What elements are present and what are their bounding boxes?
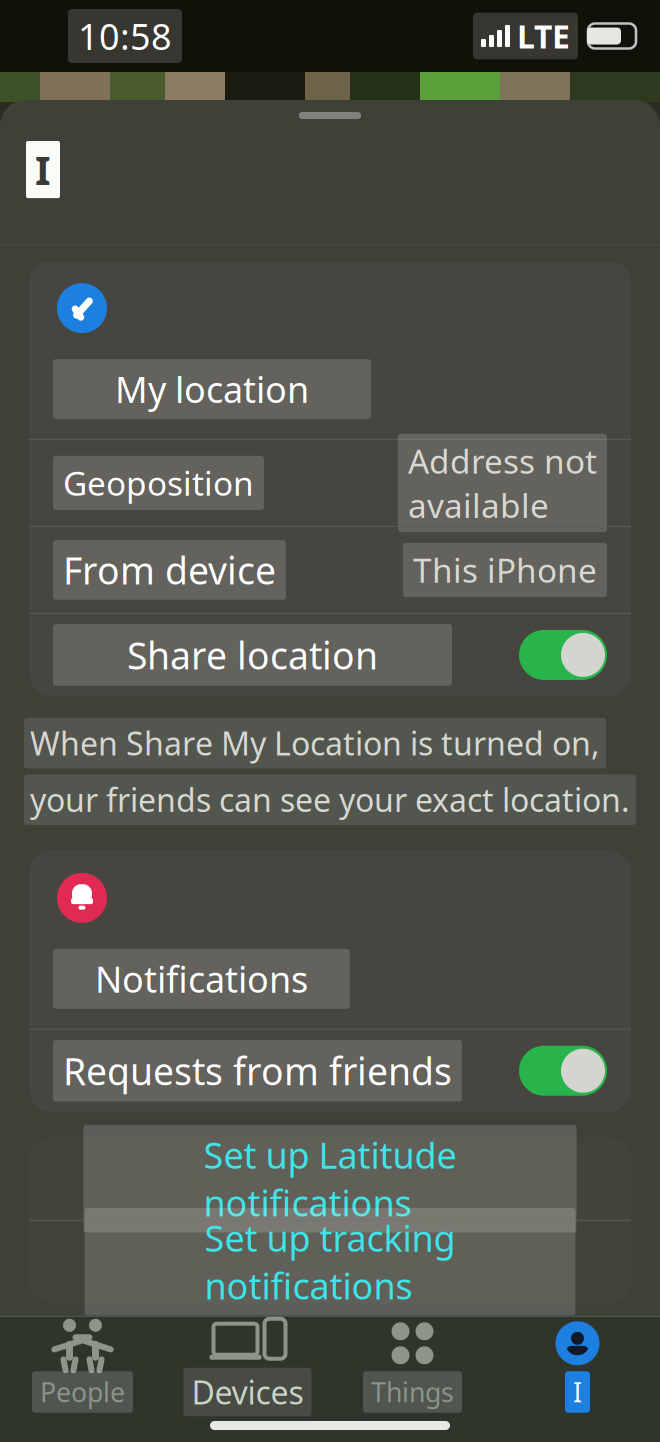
staticText: Address not available bbox=[408, 439, 597, 527]
button[interactable]: Set up Latitude notifications bbox=[29, 1138, 631, 1220]
staticText: I bbox=[35, 143, 51, 196]
button[interactable]: From device bbox=[29, 527, 631, 613]
staticText: Geoposition bbox=[63, 461, 254, 505]
button[interactable]: Devices bbox=[165, 1324, 330, 1408]
button[interactable]: Requests from friends bbox=[29, 1030, 631, 1112]
staticText: Notifications bbox=[95, 955, 308, 1003]
staticText: LTE bbox=[517, 15, 570, 57]
button[interactable]: Share location bbox=[29, 614, 631, 696]
staticText: Set up tracking notifications bbox=[204, 1214, 455, 1309]
button[interactable]: Things bbox=[330, 1324, 495, 1408]
button[interactable]: Toggle on bbox=[519, 630, 607, 680]
button[interactable]: Geoposition bbox=[29, 440, 631, 526]
staticText: your friends can see your exact location… bbox=[30, 778, 630, 821]
staticText: I bbox=[573, 1374, 582, 1410]
staticText: People bbox=[40, 1374, 125, 1410]
button[interactable]: I bbox=[495, 1324, 660, 1408]
staticText: When Share My Location is turned on, bbox=[30, 722, 600, 764]
staticText: Requests from friends bbox=[63, 1046, 452, 1095]
staticText: Things bbox=[371, 1374, 454, 1410]
button[interactable]: Set up tracking notifications bbox=[29, 1221, 631, 1303]
staticText: Help a friend bbox=[227, 1357, 433, 1401]
button[interactable]: People bbox=[0, 1324, 165, 1408]
staticText: My location bbox=[115, 365, 309, 413]
staticText: 10:58 bbox=[78, 12, 172, 60]
staticText: Share location bbox=[127, 630, 378, 680]
staticText: Set up Latitude notifications bbox=[203, 1131, 456, 1226]
staticText: From device bbox=[63, 545, 276, 595]
staticText: This iPhone bbox=[413, 548, 597, 592]
button[interactable]: Help a friend bbox=[0, 1343, 660, 1415]
staticText: Devices bbox=[191, 1371, 303, 1413]
button[interactable]: Toggle on bbox=[519, 1046, 607, 1096]
